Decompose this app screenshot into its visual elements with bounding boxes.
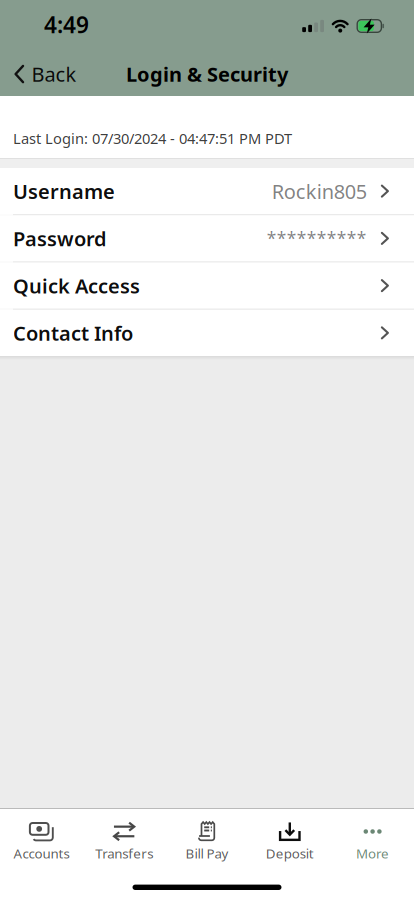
staticText: 4:49 bbox=[44, 9, 89, 39]
button[interactable]: Deposit bbox=[248, 821, 331, 862]
staticText: Username bbox=[13, 178, 115, 204]
button[interactable]: Quick Access bbox=[0, 262, 414, 309]
staticText: Back bbox=[31, 61, 76, 87]
staticText: Bill Pay bbox=[185, 844, 228, 862]
button[interactable]: Accounts bbox=[0, 821, 83, 862]
staticText: Password bbox=[13, 225, 107, 252]
button[interactable]: Transfers bbox=[83, 821, 166, 862]
staticText: Last Login: 07/30/2024 - 04:47:51 PM PDT bbox=[13, 128, 292, 148]
staticText: Rockin805 bbox=[272, 178, 367, 204]
button[interactable]: Back bbox=[0, 61, 76, 87]
staticText: Deposit bbox=[266, 844, 314, 862]
staticText: ********** bbox=[267, 227, 367, 250]
button[interactable]: Username bbox=[0, 168, 414, 214]
button[interactable]: More bbox=[331, 821, 414, 862]
button[interactable]: Password bbox=[0, 215, 414, 261]
staticText: Contact Info bbox=[13, 320, 133, 346]
staticText: Transfers bbox=[95, 844, 153, 862]
staticText: More bbox=[356, 844, 389, 862]
button[interactable]: Contact Info bbox=[0, 310, 414, 356]
staticText: Quick Access bbox=[13, 272, 140, 299]
staticText: Accounts bbox=[13, 844, 69, 862]
button[interactable]: Bill Pay bbox=[166, 821, 248, 862]
staticText: Login & Security bbox=[126, 61, 288, 87]
